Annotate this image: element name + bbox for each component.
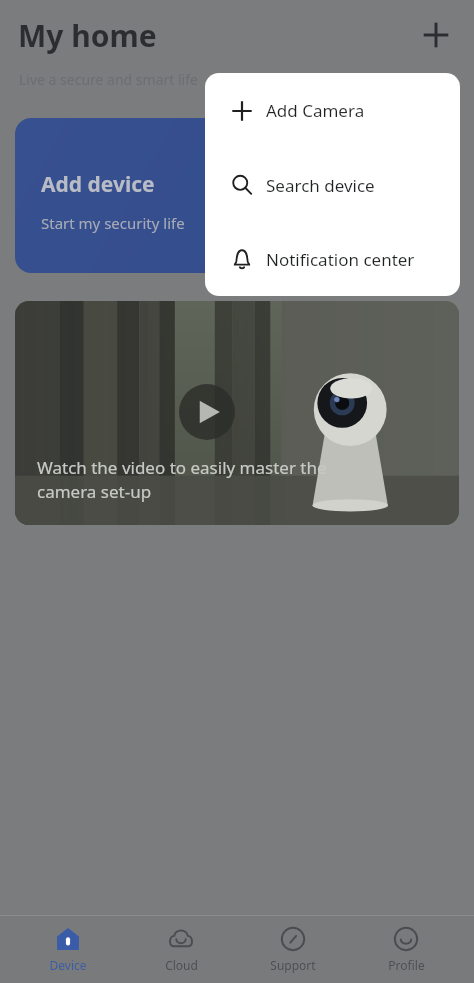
staticText: Notification center xyxy=(266,248,415,271)
staticText: Add Camera xyxy=(266,99,365,122)
button[interactable]: Add xyxy=(414,13,458,57)
staticText: Device xyxy=(49,957,87,973)
staticText: Cloud xyxy=(165,957,198,973)
button[interactable]: Search device xyxy=(205,148,460,222)
button[interactable]: Add Camera xyxy=(205,73,460,148)
button[interactable]: Profile xyxy=(361,916,451,983)
staticText: Support xyxy=(270,957,316,973)
button[interactable]: Add device xyxy=(15,118,459,273)
button[interactable]: Device xyxy=(23,916,113,983)
staticText: Live a secure and smart life xyxy=(19,70,198,89)
staticText: Profile xyxy=(388,957,425,973)
staticText: Watch the video to easily master the cam… xyxy=(37,456,383,503)
staticText: Search device xyxy=(266,174,375,197)
button[interactable]: Notification center xyxy=(205,222,460,296)
button[interactable]: Play setup video xyxy=(15,301,459,525)
staticText: Add device xyxy=(41,170,155,199)
staticText: My home xyxy=(18,15,157,56)
button[interactable]: Cloud xyxy=(136,916,226,983)
button[interactable]: Support xyxy=(248,916,338,983)
staticText: Start my security life xyxy=(41,213,185,233)
